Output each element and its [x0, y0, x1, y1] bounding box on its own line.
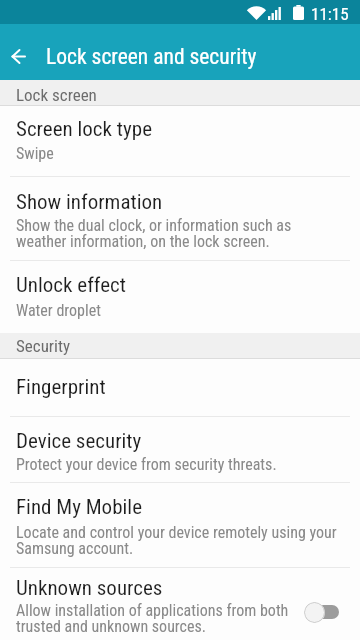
- button[interactable]: Unknown sources: [0, 568, 360, 636]
- staticText: Screen lock type: [16, 117, 152, 142]
- button[interactable]: [304, 601, 339, 623]
- button[interactable]: Unlock effect: [0, 261, 360, 333]
- staticText: Show information: [16, 190, 163, 215]
- staticText: Find My Mobile: [16, 495, 142, 520]
- staticText: 11:15: [311, 4, 349, 24]
- button[interactable]: Find My Mobile: [0, 483, 360, 567]
- staticText: Security: [16, 336, 71, 356]
- button[interactable]: Show information: [0, 177, 360, 260]
- staticText: Swipe: [16, 144, 54, 163]
- staticText: Fingerprint: [16, 375, 106, 400]
- staticText: Device security: [16, 429, 142, 454]
- staticText: Unknown sources: [16, 576, 163, 601]
- button[interactable]: Fingerprint: [0, 359, 360, 416]
- staticText: Locate and control your device remotely …: [16, 523, 337, 558]
- button[interactable]: Device security: [0, 417, 360, 482]
- staticText: Show the dual clock, or information such…: [16, 216, 292, 251]
- staticText: Water droplet: [16, 301, 101, 320]
- staticText: Lock screen: [16, 85, 97, 105]
- staticText: Unlock effect: [16, 273, 126, 298]
- staticText: Lock screen and security: [46, 44, 257, 69]
- staticText: Protect your device from security threat…: [16, 455, 277, 474]
- button[interactable]: Screen lock type: [0, 106, 360, 176]
- staticText: Allow installation of applications from …: [16, 601, 289, 636]
- button[interactable]: [0, 38, 36, 74]
